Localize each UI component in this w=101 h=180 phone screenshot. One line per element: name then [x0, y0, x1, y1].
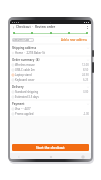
button[interactable]: Start the checkout: [12, 144, 89, 151]
button[interactable]: Step 4: [68, 32, 70, 34]
button[interactable]: Shipping address: [10, 45, 91, 50]
button[interactable]: Back: [12, 25, 56, 29]
staticText: Laptop stand: [15, 73, 32, 77]
staticText: Keyboard cover: [15, 78, 35, 82]
button[interactable]: Estimated 3-5 days: [10, 94, 91, 99]
staticText: Payment: [12, 102, 25, 106]
button[interactable]: Step 2: [31, 32, 33, 34]
button[interactable]: Delivery: [10, 84, 91, 89]
button[interactable]: Payment: [10, 101, 91, 106]
button[interactable]: Visa ···· 4417: [10, 106, 91, 111]
button[interactable]: Add a new address: [60, 37, 89, 43]
button[interactable]: Step 3: [50, 32, 52, 34]
staticText: Wireless mouse: [15, 63, 35, 67]
staticText: Order summary (4): [12, 58, 40, 62]
button[interactable]: Delivery slot: [12, 38, 34, 42]
staticText: Delivery: [12, 85, 24, 89]
button[interactable]: Step 1: [13, 32, 15, 34]
staticText: Standard shipping: [15, 90, 39, 94]
staticText: Estimated 3-5 days: [15, 95, 39, 99]
staticText: -2.00: [83, 112, 89, 116]
staticText: Checkout · Review order: [16, 25, 56, 29]
staticText: USB-C cable 2m: [15, 68, 35, 72]
button[interactable]: Keyboard cover: [10, 77, 91, 82]
button[interactable]: Step 5: [86, 32, 88, 34]
button[interactable]: Home: [48, 154, 53, 159]
button[interactable]: Wireless mouse: [10, 62, 91, 67]
staticText: 6.25: [83, 78, 89, 82]
button[interactable]: Recent apps: [80, 154, 85, 159]
button[interactable]: Standard shipping: [10, 89, 91, 94]
button[interactable]: Laptop stand: [10, 72, 91, 77]
staticText: 8.50: [83, 68, 89, 72]
staticText: 24.90: [82, 73, 89, 77]
button[interactable]: Home · 221B Baker St: [10, 50, 91, 55]
button[interactable]: More options: [86, 26, 89, 29]
staticText: Add a new address: [61, 38, 88, 42]
staticText: Home · 221B Baker St: [15, 51, 45, 55]
staticText: Delivery slot: [13, 38, 30, 42]
button[interactable]: Promo applied: [10, 111, 91, 116]
staticText: Shipping address: [12, 46, 37, 50]
staticText: Visa ···· 4417: [15, 107, 31, 111]
staticText: Promo applied: [15, 112, 34, 116]
staticText: Start the checkout: [36, 146, 65, 150]
staticText: 12.00: [82, 63, 89, 67]
staticText: 3.00: [83, 90, 89, 94]
button[interactable]: USB-C cable 2m: [10, 67, 91, 72]
button[interactable]: Order summary (4): [10, 57, 91, 62]
